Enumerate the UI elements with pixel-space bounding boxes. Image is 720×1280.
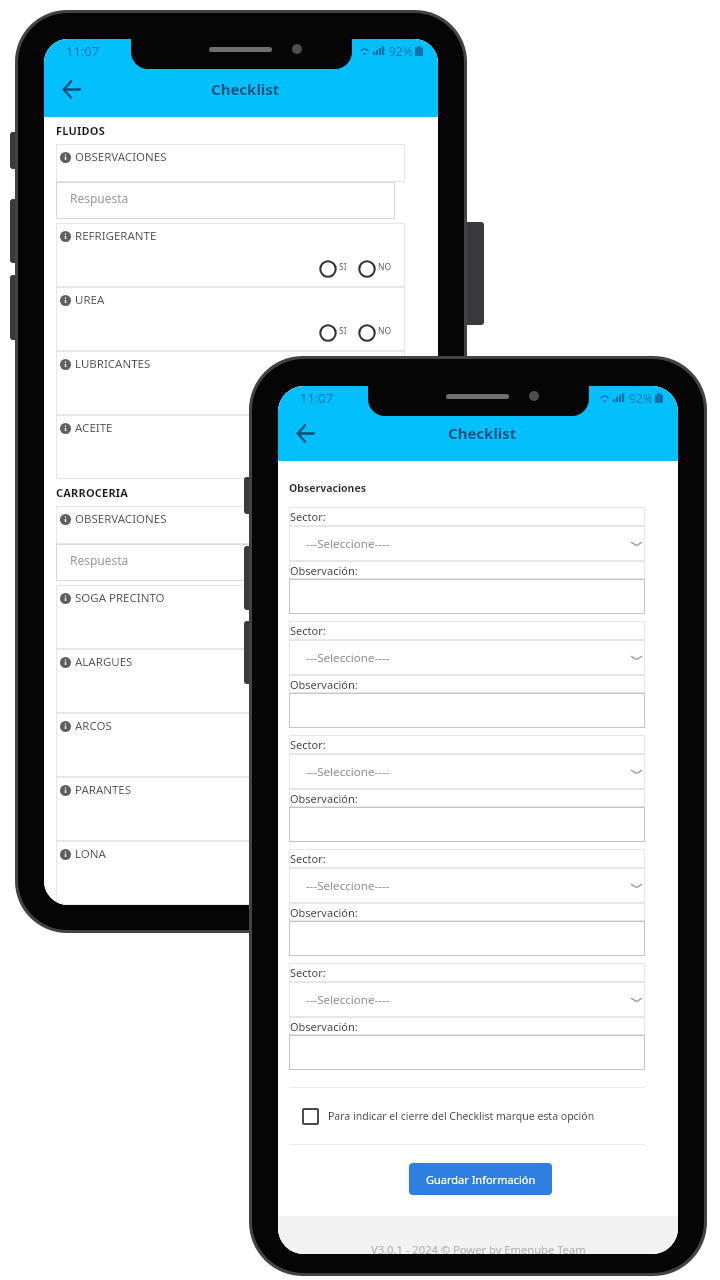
staticText: NO bbox=[378, 325, 392, 337]
staticText: Sector: bbox=[290, 623, 326, 638]
staticText: ---Seleccione---- bbox=[306, 650, 390, 666]
staticText: Observaciones bbox=[289, 481, 366, 495]
staticText: OBSERVACIONES bbox=[75, 149, 167, 165]
button[interactable]: Back bbox=[56, 74, 86, 104]
button[interactable]: UREA bbox=[56, 287, 405, 351]
button[interactable]: PARANTES bbox=[56, 777, 405, 841]
staticText: ACEITE bbox=[75, 420, 113, 436]
staticText: REFRIGERANTE bbox=[75, 228, 157, 244]
staticText: 11:07 bbox=[66, 42, 100, 60]
button[interactable]: SOGA PRECINTO bbox=[56, 585, 405, 649]
button[interactable]: LUBRICANTES bbox=[56, 351, 405, 415]
staticText: Sector: bbox=[290, 737, 326, 752]
staticText: NO bbox=[378, 261, 392, 273]
button[interactable]: Respuesta bbox=[56, 182, 395, 219]
staticText: ALARGUES bbox=[75, 654, 133, 670]
staticText: LUBRICANTES bbox=[75, 356, 151, 372]
staticText: OBSERVACIONES bbox=[75, 511, 167, 527]
staticText: Observación: bbox=[290, 905, 358, 920]
button[interactable]: ALARGUES bbox=[56, 649, 405, 713]
button[interactable]: Back bbox=[290, 418, 320, 448]
staticText: Respuesta bbox=[70, 552, 129, 568]
staticText: Sector: bbox=[290, 851, 326, 866]
staticText: ARCOS bbox=[75, 718, 112, 734]
staticText: Guardar Información bbox=[426, 1172, 536, 1187]
staticText: Para indicar el cierre del Checklist mar… bbox=[328, 1109, 595, 1123]
button[interactable]: ARCOS bbox=[56, 713, 405, 777]
staticText: 92% bbox=[389, 43, 413, 59]
staticText: PARANTES bbox=[75, 782, 132, 798]
staticText: CARROCERIA bbox=[56, 485, 129, 500]
button[interactable]: Respuesta bbox=[56, 544, 395, 581]
staticText: V3.0.1 - 2024 © Power by Emenube Team bbox=[371, 1242, 586, 1254]
button[interactable]: LONA bbox=[56, 841, 405, 905]
staticText: Sector: bbox=[290, 965, 326, 980]
staticText: Observación: bbox=[290, 1019, 358, 1034]
button[interactable]: Guardar Información bbox=[409, 1163, 552, 1195]
button[interactable]: ---Seleccione---- bbox=[289, 868, 645, 903]
staticText: Checklist bbox=[448, 423, 517, 443]
staticText: ---Seleccione---- bbox=[306, 764, 390, 780]
staticText: Observación: bbox=[290, 677, 358, 692]
staticText: Observación: bbox=[290, 791, 358, 806]
staticText: 11:07 bbox=[300, 389, 334, 407]
button[interactable]: Cerrar checklist bbox=[302, 1108, 319, 1125]
staticText: UREA bbox=[75, 292, 105, 308]
button[interactable]: ---Seleccione---- bbox=[289, 526, 645, 561]
button[interactable] bbox=[289, 1035, 645, 1070]
staticText: ---Seleccione---- bbox=[306, 878, 390, 894]
button[interactable] bbox=[289, 807, 645, 842]
staticText: Checklist bbox=[211, 79, 280, 99]
staticText: Respuesta bbox=[70, 190, 129, 206]
button[interactable] bbox=[289, 693, 645, 728]
button[interactable]: OBSERVACIONES bbox=[56, 144, 405, 182]
button[interactable]: ---Seleccione---- bbox=[289, 754, 645, 789]
button[interactable]: REFRIGERANTE bbox=[56, 223, 405, 287]
button[interactable] bbox=[289, 579, 645, 614]
staticText: ---Seleccione---- bbox=[306, 992, 390, 1008]
staticText: SI bbox=[339, 261, 347, 273]
staticText: SOGA PRECINTO bbox=[75, 590, 165, 606]
button[interactable]: ACEITE bbox=[56, 415, 405, 479]
button[interactable]: ---Seleccione---- bbox=[289, 982, 645, 1017]
staticText: LONA bbox=[75, 846, 106, 862]
staticText: Sector: bbox=[290, 509, 326, 524]
staticText: FLUIDOS bbox=[56, 123, 105, 138]
staticText: SI bbox=[339, 325, 347, 337]
button[interactable]: ---Seleccione---- bbox=[289, 640, 645, 675]
staticText: Observación: bbox=[290, 563, 358, 578]
button[interactable]: OBSERVACIONES bbox=[56, 506, 405, 544]
staticText: ---Seleccione---- bbox=[306, 536, 390, 552]
staticText: 92% bbox=[629, 390, 653, 406]
button[interactable] bbox=[289, 921, 645, 956]
